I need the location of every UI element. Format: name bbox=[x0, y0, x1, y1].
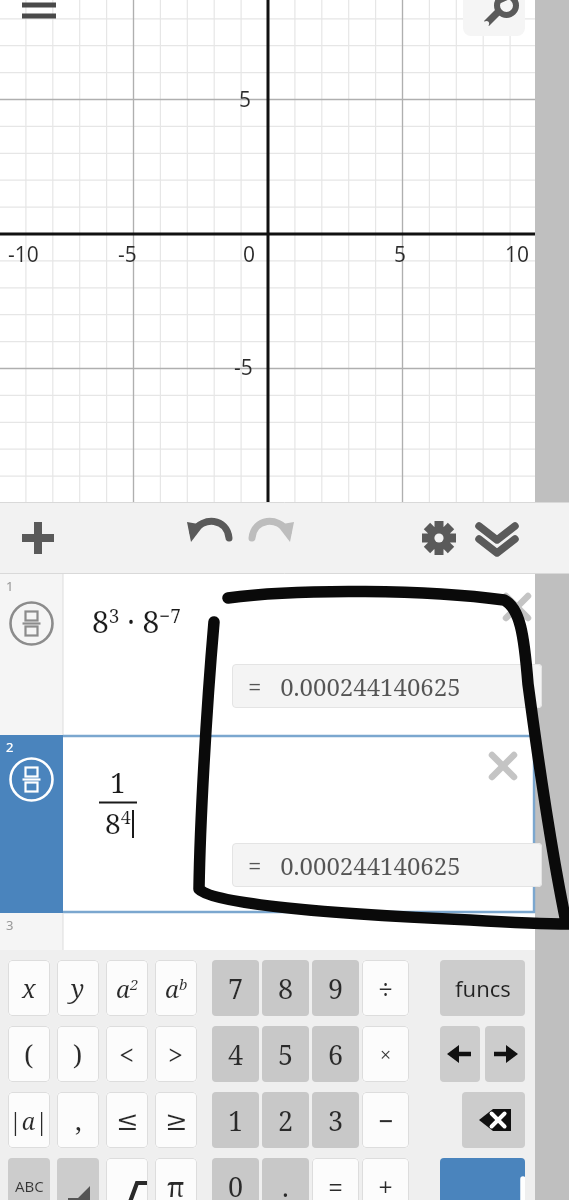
staticText: 1 bbox=[6, 577, 14, 595]
staticText: 84 bbox=[105, 804, 131, 842]
button[interactable]: , bbox=[57, 1092, 99, 1148]
button[interactable]: × bbox=[362, 1026, 409, 1082]
staticText: ) bbox=[73, 1036, 83, 1073]
staticText: 0 bbox=[243, 240, 256, 269]
button[interactable]: < bbox=[106, 1026, 148, 1082]
button[interactable]: Settings tools bbox=[463, 0, 525, 36]
staticText: 2 bbox=[6, 738, 14, 756]
button[interactable]: 2 bbox=[0, 735, 569, 913]
staticText: 3 bbox=[6, 916, 14, 934]
button[interactable]: Move right bbox=[485, 1026, 525, 1082]
button[interactable]: + bbox=[362, 1158, 409, 1200]
button[interactable]: x bbox=[8, 960, 50, 1016]
staticText: = 0.000244140625 bbox=[248, 670, 461, 703]
button[interactable]: Menu bbox=[14, 0, 66, 46]
button[interactable]: π bbox=[155, 1158, 197, 1200]
button[interactable]: a to the b bbox=[155, 960, 197, 1016]
staticText: < bbox=[119, 1036, 135, 1073]
button[interactable]: = 0.000244140625 bbox=[232, 664, 542, 708]
staticText: -5 bbox=[118, 240, 137, 269]
staticText: , bbox=[75, 1102, 82, 1139]
staticText: ab bbox=[165, 972, 188, 1005]
staticText: × bbox=[380, 1041, 392, 1068]
button[interactable]: . bbox=[262, 1158, 309, 1200]
button[interactable]: > bbox=[155, 1026, 197, 1082]
staticText: 4 bbox=[228, 1036, 244, 1073]
staticText: 5 bbox=[394, 240, 407, 269]
button[interactable]: y bbox=[57, 960, 99, 1016]
button[interactable]: a squared bbox=[106, 960, 148, 1016]
staticText: a2 bbox=[116, 972, 139, 1005]
staticText: ≤ bbox=[116, 1105, 139, 1136]
staticText: . bbox=[282, 1168, 289, 1200]
staticText: = 0.000244140625 bbox=[248, 849, 461, 882]
button[interactable]: Add expression bbox=[14, 512, 66, 564]
button[interactable]: ABC bbox=[8, 1158, 50, 1200]
button[interactable]: 1 bbox=[212, 1092, 259, 1148]
button[interactable]: Square root bbox=[106, 1158, 148, 1200]
button[interactable]: 9 bbox=[312, 960, 359, 1016]
staticText: ≥ bbox=[165, 1105, 188, 1136]
button[interactable]: Expression type bbox=[9, 601, 54, 646]
button[interactable]: Expression type bbox=[9, 757, 54, 802]
staticText: 5 bbox=[239, 85, 252, 114]
staticText: 7 bbox=[228, 970, 244, 1007]
staticText: 1 bbox=[110, 763, 126, 801]
button[interactable]: ) bbox=[57, 1026, 99, 1082]
button[interactable]: Backspace bbox=[462, 1092, 525, 1148]
button[interactable]: 3 bbox=[0, 913, 569, 950]
staticText: -10 bbox=[8, 240, 39, 269]
button[interactable]: ≤ bbox=[106, 1092, 148, 1148]
staticText: = bbox=[328, 1168, 344, 1200]
button[interactable]: ( bbox=[8, 1026, 50, 1082]
staticText: 6 bbox=[328, 1036, 344, 1073]
button[interactable]: = bbox=[312, 1158, 359, 1200]
staticText: 1 bbox=[228, 1102, 244, 1139]
staticText: 5 bbox=[278, 1036, 294, 1073]
button[interactable]: 8 bbox=[262, 960, 309, 1016]
staticText: -5 bbox=[234, 353, 253, 382]
button[interactable]: Delete expression bbox=[496, 586, 538, 628]
button[interactable]: Redo bbox=[246, 512, 298, 564]
button[interactable]: ÷ bbox=[362, 960, 409, 1016]
staticText: x bbox=[22, 971, 36, 1005]
staticText: 3 bbox=[328, 1102, 344, 1139]
button[interactable]: Delete expression bbox=[482, 745, 524, 787]
button[interactable]: 7 bbox=[212, 960, 259, 1016]
staticText: 8 bbox=[278, 970, 294, 1007]
button[interactable]: Enter bbox=[440, 1158, 525, 1200]
button[interactable]: 4 bbox=[212, 1026, 259, 1082]
staticText: ÷ bbox=[378, 970, 394, 1007]
button[interactable]: funcs bbox=[440, 960, 525, 1016]
staticText: 2 bbox=[278, 1102, 294, 1139]
staticText: > bbox=[168, 1036, 184, 1073]
button[interactable]: Settings bbox=[413, 512, 465, 564]
staticText: 0 bbox=[228, 1168, 244, 1200]
staticText: funcs bbox=[455, 973, 511, 1003]
button[interactable]: ≥ bbox=[155, 1092, 197, 1148]
button[interactable]: |a| bbox=[8, 1092, 50, 1148]
staticText: ( bbox=[24, 1036, 34, 1073]
button[interactable]: 5 bbox=[262, 1026, 309, 1082]
button[interactable]: Collapse bbox=[471, 512, 523, 564]
staticText: + bbox=[378, 1168, 394, 1200]
staticText: 10 bbox=[505, 240, 530, 269]
staticText: π bbox=[167, 1168, 185, 1200]
staticText: ABC bbox=[15, 1176, 44, 1196]
staticText: 9 bbox=[328, 970, 344, 1007]
button[interactable]: Move left bbox=[440, 1026, 480, 1082]
button[interactable]: Audio bbox=[57, 1158, 99, 1200]
button[interactable]: Undo bbox=[183, 512, 235, 564]
staticText: − bbox=[378, 1102, 394, 1139]
button[interactable]: 1 bbox=[0, 574, 569, 735]
button[interactable]: 2 bbox=[262, 1092, 309, 1148]
button[interactable]: − bbox=[362, 1092, 409, 1148]
button[interactable]: 6 bbox=[312, 1026, 359, 1082]
staticText: y bbox=[71, 971, 85, 1005]
button[interactable]: = 0.000244140625 bbox=[232, 843, 542, 887]
staticText: 83 · 8−7 bbox=[92, 601, 181, 642]
staticText: |a| bbox=[9, 1105, 49, 1136]
button[interactable]: 3 bbox=[312, 1092, 359, 1148]
button[interactable]: 0 bbox=[212, 1158, 259, 1200]
